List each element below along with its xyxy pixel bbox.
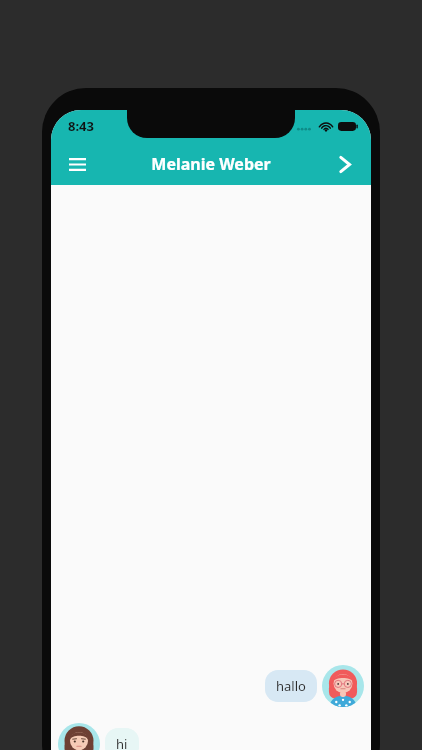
button[interactable]: Menu: [59, 146, 95, 182]
button[interactable]: hallo: [265, 670, 317, 702]
staticText: hi: [116, 735, 128, 750]
button[interactable]: hi: [105, 728, 139, 750]
staticText: Melanie Weber: [151, 153, 271, 175]
button[interactable]: Forward: [327, 146, 363, 182]
button[interactable]: Melanie Weber avatar: [322, 665, 364, 707]
staticText: 8:43: [68, 117, 94, 135]
button[interactable]: My avatar: [58, 723, 100, 750]
staticText: hallo: [276, 677, 306, 695]
